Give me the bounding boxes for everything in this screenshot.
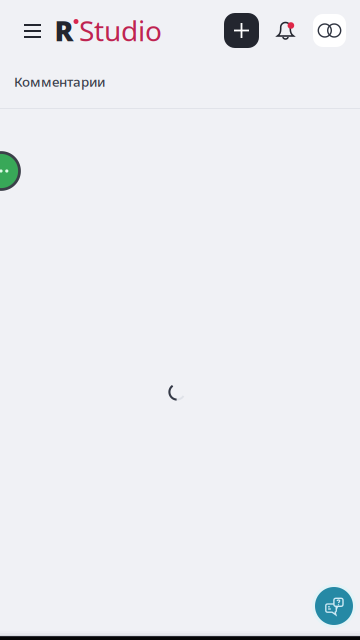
button[interactable]: Create bbox=[224, 13, 259, 48]
button[interactable]: RStudio home bbox=[55, 8, 162, 52]
staticText: R bbox=[54, 12, 73, 49]
staticText: Комментарии bbox=[14, 73, 105, 90]
button[interactable]: Menu bbox=[22, 8, 43, 52]
button[interactable]: Notifications bbox=[268, 8, 303, 52]
button[interactable]: Support chat bbox=[312, 584, 356, 628]
button[interactable]: Contacts bbox=[313, 14, 346, 47]
staticText: Studio bbox=[79, 12, 162, 49]
